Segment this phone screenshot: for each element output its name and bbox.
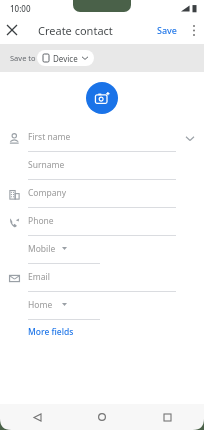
button[interactable]: Close (0, 18, 24, 42)
button[interactable]: Back (26, 406, 48, 428)
staticText: Device (53, 53, 78, 64)
button[interactable]: Add photo (86, 82, 118, 114)
staticText: Mobile (28, 243, 56, 255)
button[interactable]: Save (157, 24, 178, 36)
button[interactable]: More fields (28, 326, 74, 338)
button[interactable]: Expand name fields (182, 130, 198, 146)
button[interactable]: Email (0, 264, 204, 292)
button[interactable]: Home (0, 292, 204, 320)
button[interactable]: Recent apps (156, 406, 178, 428)
button[interactable]: Surname (0, 152, 204, 180)
staticText: Company (28, 187, 67, 199)
staticText: Phone (28, 215, 54, 227)
staticText: Surname (28, 159, 65, 171)
button[interactable]: Phone (0, 208, 204, 236)
staticText: Email (28, 271, 50, 283)
button[interactable]: More options (184, 18, 204, 42)
button[interactable]: Mobile (0, 236, 204, 264)
staticText: Create contact (38, 23, 113, 38)
staticText: More fields (28, 326, 74, 338)
staticText: Save to (10, 53, 36, 63)
staticText: First name (28, 131, 71, 143)
button[interactable]: Home (91, 406, 113, 428)
button[interactable]: Device (37, 50, 94, 66)
staticText: 10:00 (10, 3, 31, 14)
button[interactable]: Company (0, 180, 204, 208)
button[interactable]: First name (0, 124, 204, 152)
staticText: Home (28, 299, 53, 311)
